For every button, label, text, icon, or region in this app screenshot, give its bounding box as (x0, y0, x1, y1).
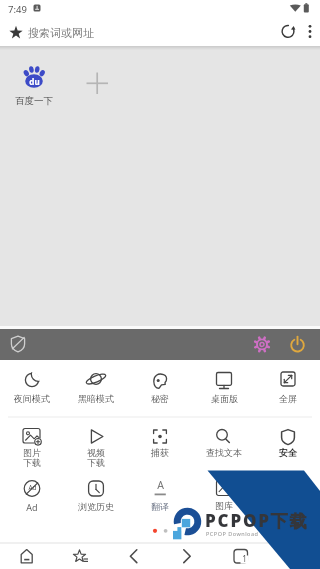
button[interactable] (159, 543, 212, 569)
button[interactable] (192, 420, 256, 470)
button[interactable] (265, 543, 318, 569)
staticText: du (29, 76, 40, 87)
button[interactable] (128, 474, 192, 516)
staticText: 7:49 (8, 3, 27, 16)
button[interactable] (106, 543, 159, 569)
staticText: 翻译 (151, 501, 169, 512)
staticText: 桌面版 (211, 393, 238, 404)
button[interactable] (64, 364, 128, 412)
staticText: 秘密 (151, 393, 169, 404)
button[interactable] (128, 420, 192, 470)
button[interactable] (212, 543, 265, 569)
button[interactable] (64, 474, 128, 516)
button[interactable] (192, 474, 256, 516)
button[interactable] (300, 20, 320, 46)
staticText: PCPOP下载 (205, 509, 309, 532)
staticText: 全屏 (279, 393, 297, 404)
staticText: 视频 下载 (87, 447, 105, 469)
staticText: PCPOP Download (206, 530, 259, 537)
button[interactable] (0, 474, 64, 516)
staticText: 图片 下载 (23, 447, 41, 469)
button[interactable] (6, 331, 30, 357)
staticText: 夜间模式 (14, 393, 50, 404)
button[interactable] (74, 58, 120, 106)
staticText: 图库 (215, 500, 233, 511)
staticText: 浏览历史 (78, 501, 114, 512)
button[interactable] (0, 18, 262, 46)
staticText: A (157, 478, 164, 492)
button[interactable] (276, 20, 300, 44)
staticText: 1 (242, 553, 247, 564)
button[interactable] (192, 364, 256, 412)
button[interactable] (256, 420, 320, 470)
staticText: Ad (26, 501, 38, 513)
staticText: 百度一下 (15, 95, 53, 107)
button[interactable] (250, 332, 274, 357)
button[interactable] (53, 543, 106, 569)
button[interactable] (10, 56, 58, 106)
button[interactable] (0, 364, 64, 412)
staticText: 查找文本 (206, 447, 242, 458)
button[interactable] (285, 333, 310, 357)
button[interactable] (128, 364, 192, 412)
button[interactable] (64, 420, 128, 470)
staticText: 搜索词或网址 (28, 26, 94, 40)
staticText: 安全 (279, 447, 297, 458)
staticText: 捕获 (151, 447, 169, 458)
button[interactable] (256, 364, 320, 412)
staticText: 黑暗模式 (78, 393, 114, 404)
button[interactable] (0, 543, 53, 569)
staticText: Ad (28, 483, 37, 492)
button[interactable] (0, 420, 64, 470)
